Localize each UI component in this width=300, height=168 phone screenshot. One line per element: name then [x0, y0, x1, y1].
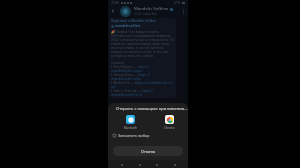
staticText: 🎉 Новый Trax вышел в день. Обновление чт… — [111, 29, 174, 58]
staticText: Chrome — [164, 126, 175, 130]
staticText: Отмена — [141, 149, 156, 154]
button[interactable]: Bluetooth — [110, 115, 150, 130]
button[interactable]: Chrome — [150, 115, 188, 130]
staticText: 3 521 subscriber — [134, 12, 158, 16]
button[interactable]: Запомнить выбор — [108, 133, 188, 138]
button[interactable]: Keyboard — [171, 161, 178, 168]
button[interactable]: Переслано от Mandelic Softline — [109, 18, 176, 98]
button[interactable]: More options — [180, 8, 187, 15]
staticText: Переслано от Mandelic Softline — [111, 19, 156, 23]
button[interactable]: Back — [153, 161, 160, 168]
button[interactable]: Back — [109, 7, 117, 15]
staticText: Открыть с помощью приложения… — [116, 106, 188, 112]
staticText: 20:46 — [111, 1, 120, 5]
staticText: Скачать: • Play Маркет — https://mandeli… — [111, 60, 174, 97]
button[interactable]: Home — [136, 161, 143, 168]
staticText: Mandelic Softline — [134, 6, 169, 12]
staticText: mandelicsoftline — [115, 24, 141, 28]
staticText: Запомнить выбор — [118, 133, 150, 138]
staticText: Bluetooth — [124, 126, 137, 130]
button[interactable]: Отмена — [113, 146, 183, 156]
button[interactable]: Recents — [118, 161, 125, 168]
staticText: 67% — [174, 1, 181, 5]
